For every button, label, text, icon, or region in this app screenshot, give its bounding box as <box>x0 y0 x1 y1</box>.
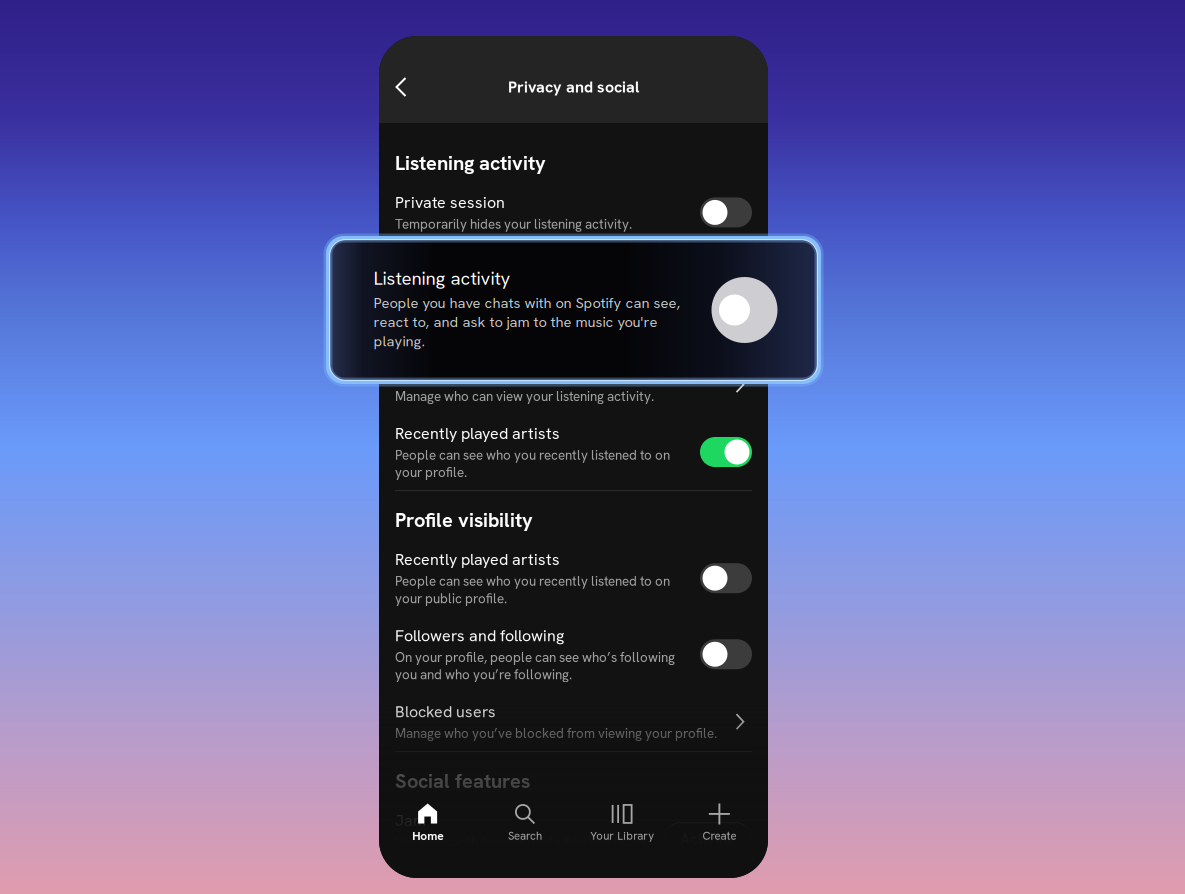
button[interactable]: Blocked users <box>379 692 768 751</box>
staticText: Create <box>702 828 736 843</box>
button[interactable]: Recently played artists <box>379 414 768 490</box>
staticText: Listening activity <box>373 266 510 290</box>
staticText: Activate <box>680 830 736 849</box>
button[interactable]: Create <box>671 803 768 843</box>
button[interactable]: Listening activity <box>328 238 819 382</box>
staticText: Search <box>508 828 542 843</box>
staticText: Social features <box>395 768 530 794</box>
staticText: Use Bluetooth to seamlessly find and lis… <box>395 833 645 868</box>
staticText: On your profile, people can see who’s fo… <box>395 649 675 683</box>
staticText: People can see who you recently listened… <box>395 572 670 607</box>
staticText: Profile visibility <box>395 507 533 533</box>
button[interactable]: Search <box>476 803 573 843</box>
staticText: People can see who you recently listened… <box>395 446 670 481</box>
button[interactable]: Listening activity <box>379 355 768 414</box>
staticText: Jam <box>395 810 426 831</box>
staticText: Listening activity <box>395 364 516 385</box>
button[interactable]: Your Library <box>573 803 671 843</box>
staticText: Private session <box>395 192 505 213</box>
button[interactable]: Followers and following <box>379 616 768 692</box>
staticText: Followers and following <box>395 625 564 646</box>
staticText: Manage who you’ve blocked from viewing y… <box>395 725 717 742</box>
staticText: Recently played artists <box>395 549 560 570</box>
staticText: Manage who can view your listening activ… <box>395 388 654 405</box>
staticText: Listening activity <box>395 261 516 282</box>
button[interactable]: Recently played artists <box>379 540 768 616</box>
staticText: Home <box>412 828 443 844</box>
staticText: People you have chats with on Spotify ca… <box>395 284 669 336</box>
button[interactable]: Home <box>379 803 476 844</box>
button[interactable]: Jam <box>379 801 768 877</box>
button[interactable]: Listening activity <box>379 242 768 355</box>
staticText: Privacy and social <box>508 77 639 97</box>
staticText: Blocked users <box>395 701 496 722</box>
staticText: People you have chats with on Spotify ca… <box>373 293 680 351</box>
staticText: Recently played artists <box>395 423 560 444</box>
button[interactable]: Back <box>380 65 422 109</box>
staticText: Temporarily hides your listening activit… <box>395 215 632 233</box>
button[interactable]: Private session <box>379 183 768 242</box>
staticText: Listening activity <box>395 150 546 176</box>
staticText: Your Library <box>590 828 654 843</box>
